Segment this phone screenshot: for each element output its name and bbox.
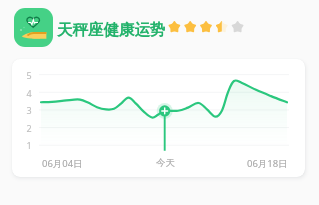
staticText: 06月18日 (247, 157, 288, 170)
staticText: 3 (26, 104, 32, 116)
button[interactable]: Health fortune icon (14, 8, 53, 47)
staticText: 1 (26, 139, 32, 151)
staticText: 今天 (156, 157, 175, 169)
staticText: 5 (26, 69, 32, 81)
button[interactable]: 5 (12, 59, 305, 177)
button[interactable]: 天秤座健康运势 (57, 20, 166, 40)
staticText: 4 (26, 87, 32, 99)
staticText: 2 (26, 122, 32, 134)
staticText: 06月04日 (42, 157, 83, 170)
button[interactable]: Rating 3.5 of 5 (166, 19, 246, 36)
